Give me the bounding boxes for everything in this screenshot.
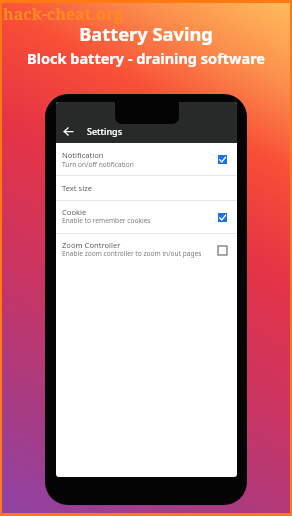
staticText: Enable zoom controller to zoom in/out pa… bbox=[62, 249, 202, 258]
staticText: Zoom Controller bbox=[62, 240, 121, 250]
button[interactable]: Zoom Controller bbox=[56, 234, 237, 266]
staticText: Turn on/off notification bbox=[62, 160, 134, 169]
button[interactable]: Notification bbox=[56, 143, 237, 175]
staticText: hack-cheat.org bbox=[3, 3, 124, 25]
button[interactable]: Toggle bbox=[215, 243, 229, 257]
staticText: Enable to remember cookies bbox=[62, 216, 151, 225]
staticText: Cookie bbox=[62, 207, 87, 217]
button[interactable]: Text size bbox=[56, 176, 237, 200]
button[interactable]: Cookie bbox=[56, 201, 237, 233]
button[interactable]: Toggle bbox=[215, 210, 229, 224]
button[interactable]: Back bbox=[59, 122, 77, 140]
staticText: Notification bbox=[62, 150, 104, 160]
button[interactable]: Toggle bbox=[215, 152, 229, 166]
staticText: Text size bbox=[62, 183, 93, 193]
staticText: Settings bbox=[87, 125, 123, 137]
staticText: Block battery - draining software bbox=[27, 48, 265, 68]
staticText: Battery Saving bbox=[79, 21, 213, 46]
